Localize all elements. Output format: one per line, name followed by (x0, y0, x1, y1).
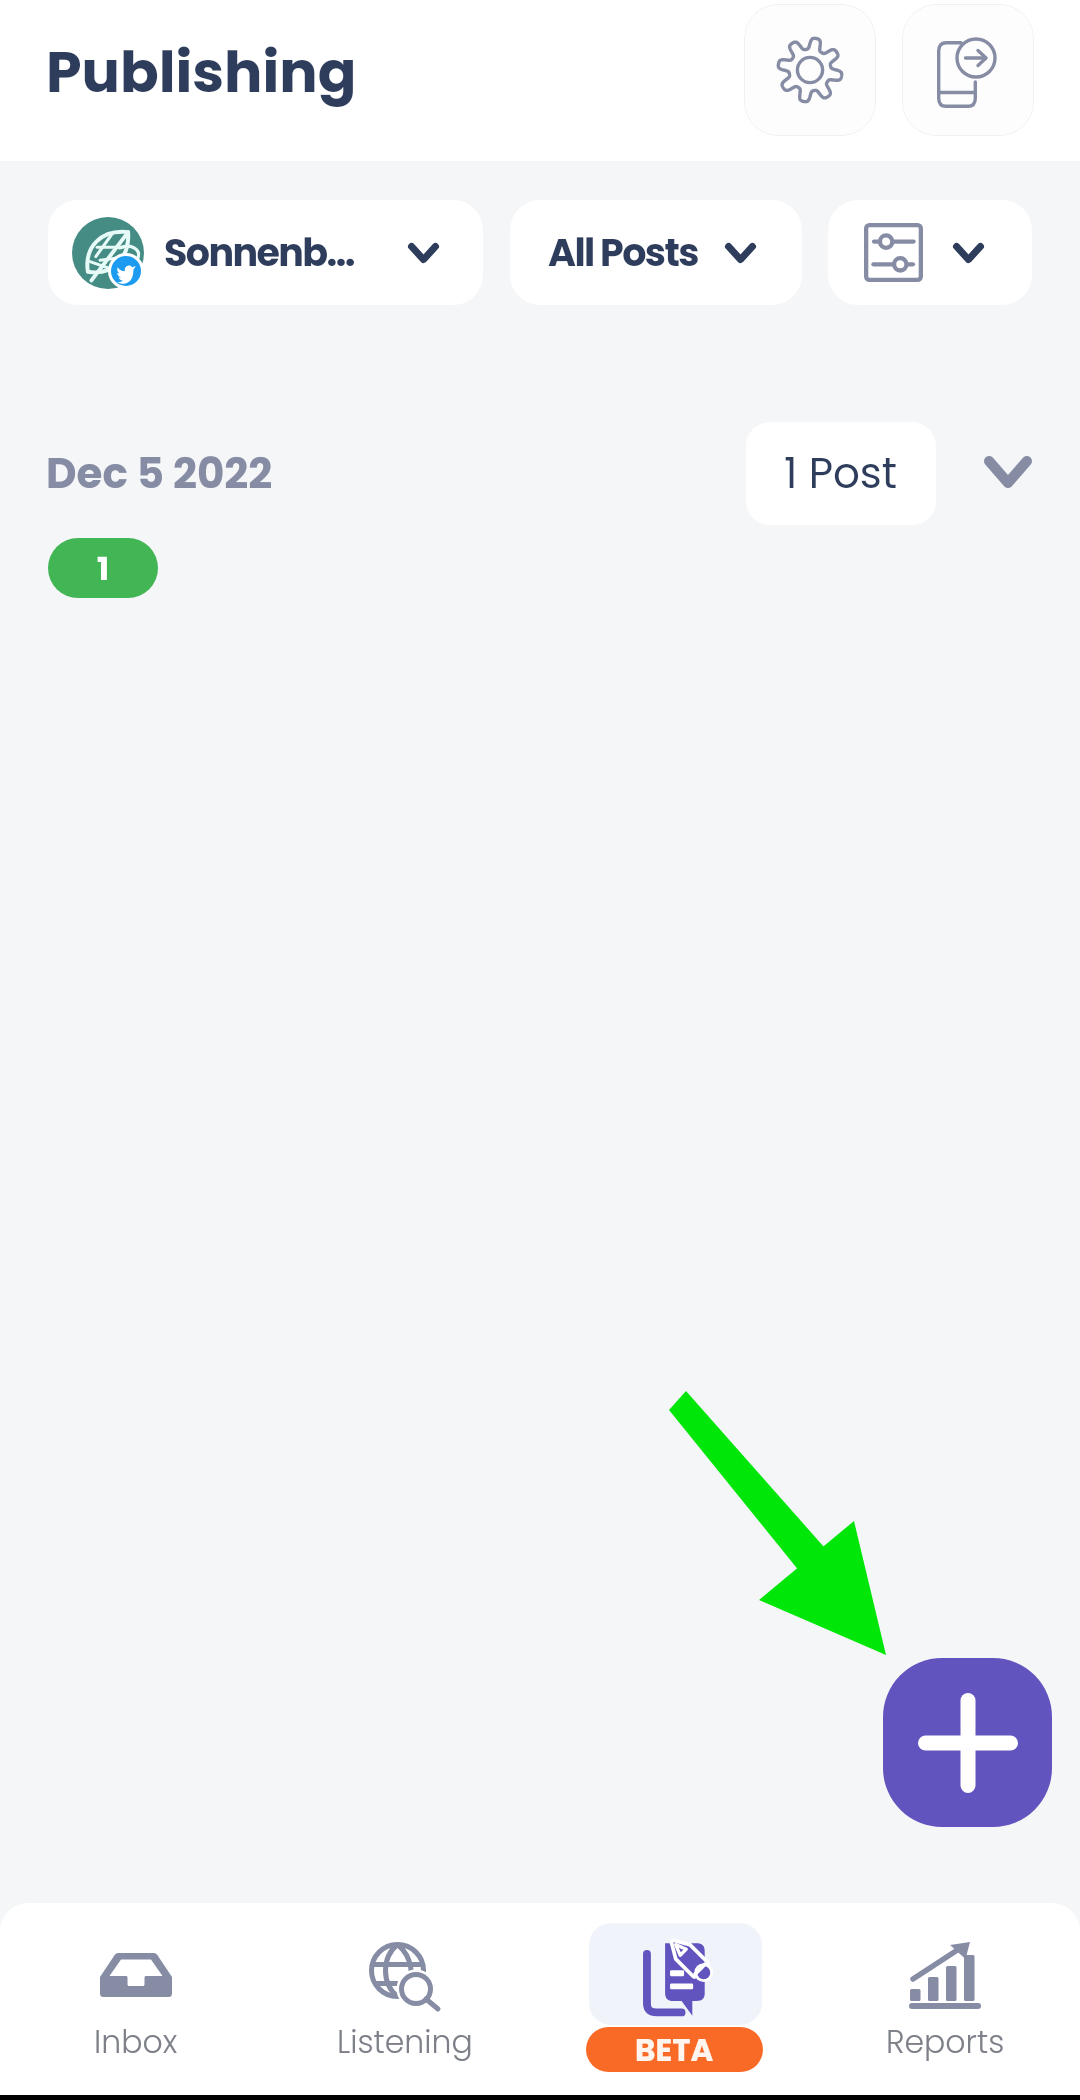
button[interactable]: All Posts filter (510, 200, 802, 305)
staticText: 1 Post (784, 444, 898, 503)
button[interactable]: More filters (828, 200, 1032, 305)
button[interactable]: Reports (845, 1903, 1045, 2083)
staticText: Dec 5 2022 (46, 444, 273, 503)
button[interactable]: Settings (744, 4, 876, 136)
button[interactable]: Create post (883, 1658, 1052, 1827)
button[interactable]: Listening (305, 1903, 505, 2083)
staticText: Publishing (46, 32, 357, 112)
staticText: Listening (337, 2020, 473, 2064)
button[interactable]: Inbox (36, 1903, 236, 2083)
button[interactable]: Account (48, 200, 483, 305)
button[interactable]: 1 Post (746, 422, 936, 525)
staticText: All Posts (548, 226, 698, 279)
staticText: BETA (635, 2028, 714, 2071)
button[interactable]: Expand day (962, 432, 1054, 512)
staticText: Reports (886, 2020, 1005, 2064)
staticText: Sonnenb… (164, 226, 354, 279)
button[interactable]: Publishing (589, 1923, 762, 2025)
staticText: 1 (97, 546, 110, 591)
staticText: Inbox (94, 2020, 178, 2064)
button[interactable]: Switch device (902, 4, 1034, 136)
